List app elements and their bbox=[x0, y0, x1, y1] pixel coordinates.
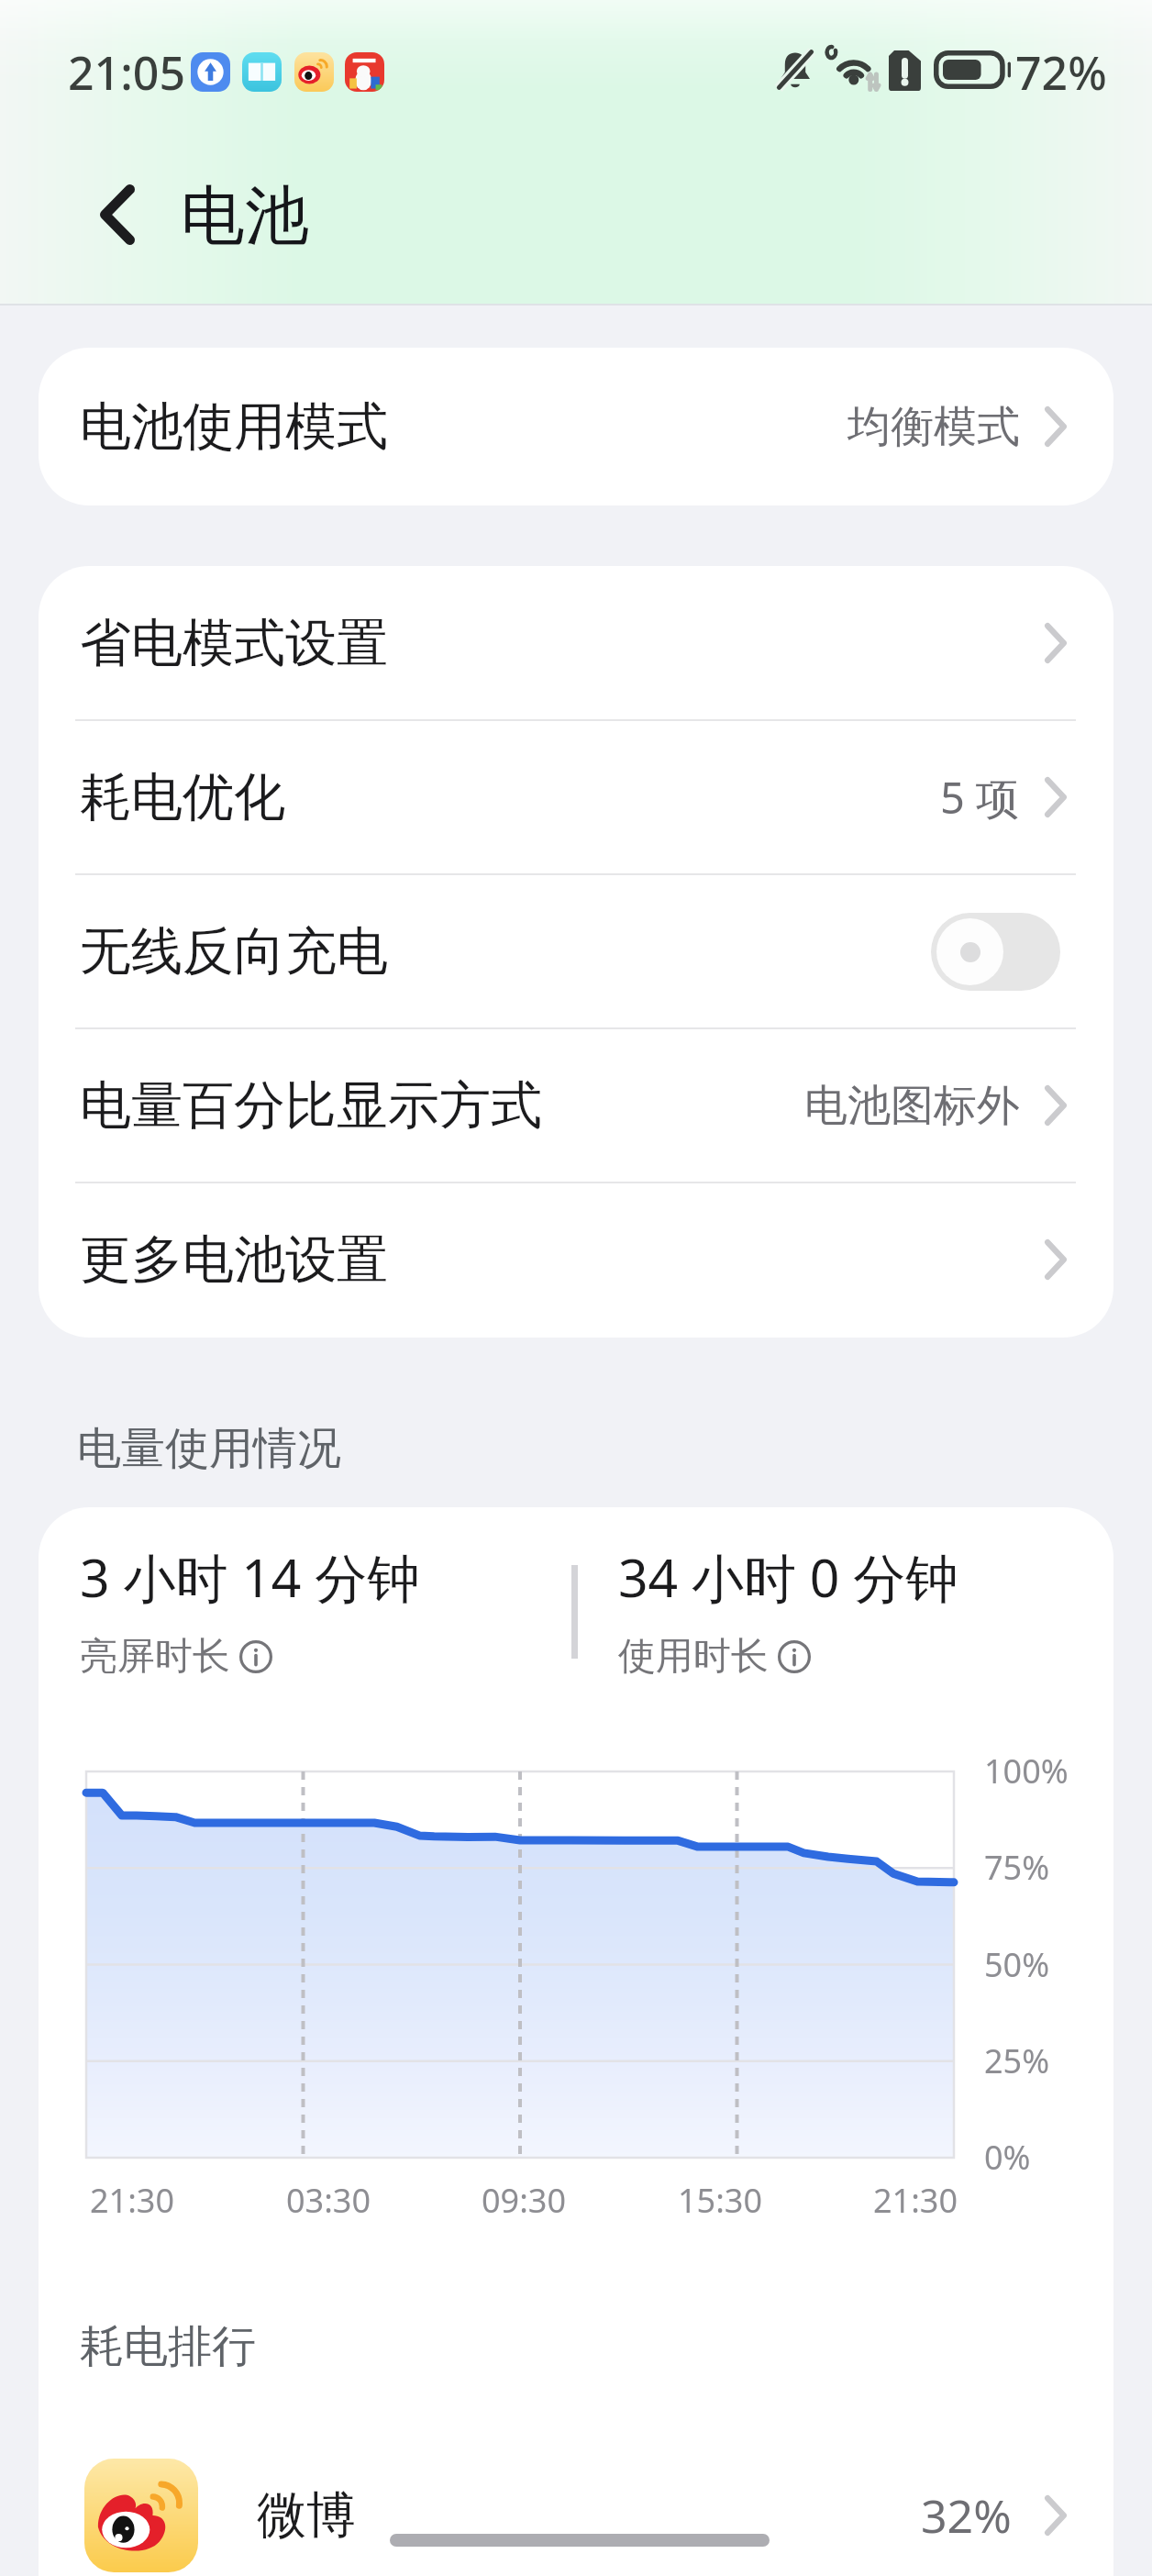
staticText: 0% bbox=[984, 2135, 1031, 2180]
staticText: 亮屏时长 bbox=[80, 1633, 230, 1681]
staticText: 100% bbox=[984, 1749, 1069, 1793]
button[interactable]: 使用时长说明 bbox=[778, 1640, 811, 1673]
staticText: 无线反向充电 bbox=[80, 919, 388, 984]
button[interactable]: 电量百分比显示方式 bbox=[39, 1028, 1113, 1183]
button[interactable]: 无线反向充电开关 bbox=[931, 913, 1060, 991]
staticText: 21:05 bbox=[68, 41, 185, 104]
staticText: 3 小时 14 分钟 bbox=[80, 1541, 420, 1613]
button[interactable]: 微博 bbox=[39, 2446, 1113, 2576]
button[interactable]: 省电模式设置 bbox=[39, 566, 1113, 720]
staticText: 使用时长 bbox=[618, 1633, 769, 1681]
staticText: 5 项 bbox=[940, 768, 1020, 827]
staticText: 耗电排行 bbox=[80, 2319, 256, 2374]
staticText: 25% bbox=[984, 2038, 1050, 2083]
staticText: 电量使用情况 bbox=[77, 1421, 341, 1476]
staticText: 15:30 bbox=[678, 2178, 763, 2223]
button[interactable]: 更多电池设置 bbox=[39, 1183, 1113, 1337]
staticText: 21:30 bbox=[873, 2178, 958, 2223]
staticText: 50% bbox=[984, 1942, 1050, 1987]
staticText: 电池 bbox=[181, 176, 309, 257]
button[interactable]: 耗电优化 bbox=[39, 720, 1113, 874]
staticText: 更多电池设置 bbox=[80, 1227, 388, 1293]
staticText: 电池使用模式 bbox=[80, 394, 388, 460]
staticText: 省电模式设置 bbox=[80, 611, 388, 676]
staticText: 电池图标外 bbox=[804, 1079, 1020, 1133]
staticText: 03:30 bbox=[286, 2178, 371, 2223]
staticText: 21:30 bbox=[90, 2178, 175, 2223]
staticText: 32% bbox=[921, 2484, 1012, 2547]
staticText: 09:30 bbox=[482, 2178, 567, 2223]
staticText: 微博 bbox=[257, 2484, 356, 2547]
staticText: 电量百分比显示方式 bbox=[80, 1073, 542, 1138]
staticText: 75% bbox=[984, 1845, 1050, 1890]
staticText: 72% bbox=[1015, 41, 1107, 104]
staticText: 34 小时 0 分钟 bbox=[618, 1541, 958, 1613]
button[interactable]: 亮屏时长说明 bbox=[239, 1640, 272, 1673]
button[interactable]: 无线反向充电 bbox=[39, 874, 1113, 1028]
staticText: 耗电优化 bbox=[80, 765, 285, 830]
button[interactable]: 电池使用模式 bbox=[39, 348, 1113, 505]
staticText: 均衡模式 bbox=[847, 400, 1020, 454]
button[interactable]: 返回 bbox=[75, 172, 160, 257]
